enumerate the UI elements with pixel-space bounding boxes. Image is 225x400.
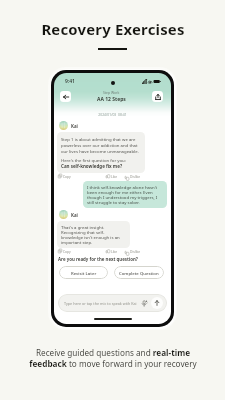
staticText: 9:41 bbox=[65, 78, 75, 85]
button[interactable]: Dislike bbox=[125, 173, 141, 179]
staticText: Kai bbox=[71, 212, 78, 218]
button[interactable]: Microphone bbox=[140, 299, 149, 308]
staticText: AA 12 Steps bbox=[97, 96, 126, 103]
button[interactable]: Revisit Later bbox=[59, 266, 108, 279]
button[interactable]: Dislike bbox=[125, 248, 141, 254]
button[interactable]: Back bbox=[60, 91, 71, 102]
button[interactable]: Complete Question bbox=[114, 266, 164, 279]
staticText: Step Work bbox=[103, 90, 120, 95]
staticText: Receive guided questions and real-time f… bbox=[29, 347, 197, 369]
staticText: I think self-knowledge alone hasn't been… bbox=[87, 184, 163, 205]
button[interactable]: Like bbox=[106, 248, 118, 254]
button[interactable]: Copy bbox=[58, 248, 71, 254]
staticText: Here's the first question for you: bbox=[61, 157, 126, 163]
staticText: Dislike bbox=[130, 249, 141, 253]
staticText: Complete Question bbox=[119, 270, 159, 276]
staticText: Like bbox=[111, 249, 118, 253]
button[interactable]: Share bbox=[152, 91, 163, 102]
staticText: Revisit Later bbox=[71, 270, 97, 276]
staticText: Copy bbox=[63, 249, 71, 253]
staticText: Step 1 is about admitting that we are po… bbox=[61, 136, 141, 154]
button[interactable]: Copy bbox=[58, 173, 71, 179]
staticText: Copy bbox=[63, 174, 71, 178]
staticText: Dislike bbox=[130, 174, 141, 178]
staticText: Can self-knowledge fix me? bbox=[61, 163, 123, 169]
button[interactable]: Send bbox=[151, 297, 163, 309]
staticText: Recovery Exercises bbox=[41, 19, 185, 39]
button[interactable]: Like bbox=[106, 173, 118, 179]
staticText: Type here or tap the mic to speak with K… bbox=[64, 301, 137, 306]
staticText: Like bbox=[111, 174, 118, 178]
staticText: 2024/01/03 08:41 bbox=[54, 112, 171, 117]
staticText: Are you ready for the next question? bbox=[58, 256, 138, 262]
staticText: That's a great insight. Recognizing that… bbox=[61, 224, 126, 245]
staticText: Kai bbox=[71, 123, 78, 129]
